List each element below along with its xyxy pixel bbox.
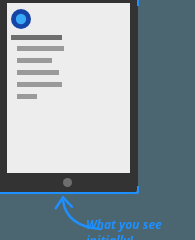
button[interactable]: App icon (0, 0, 138, 193)
button[interactable]: Home (63, 178, 72, 187)
staticText: What you see initially! (86, 216, 192, 240)
button[interactable]: App icon (11, 9, 31, 29)
button[interactable]: What you see initially! (86, 216, 192, 240)
